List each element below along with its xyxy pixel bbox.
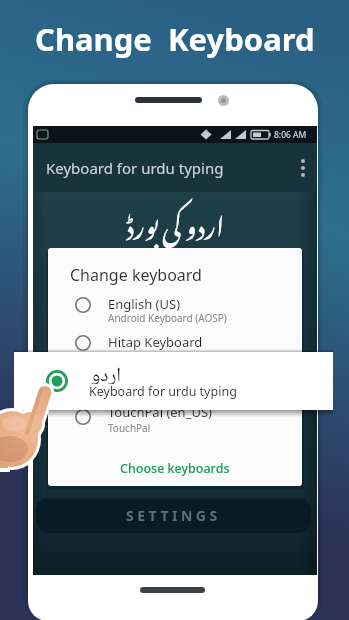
- button[interactable]: TouchPal (en_US): [48, 399, 302, 439]
- staticText: اردو: [91, 360, 122, 384]
- staticText: Hitap Keyboard: [108, 333, 203, 351]
- staticText: Change Keyboard: [35, 18, 315, 60]
- staticText: Hitap Keyboard: [108, 349, 181, 363]
- button[interactable]: Choose keyboards: [120, 460, 230, 477]
- button[interactable]: اردو: [14, 352, 333, 410]
- staticText: Change keyboard: [70, 264, 202, 286]
- staticText: Keyboard for urdu typing: [89, 383, 237, 400]
- staticText: TouchPal (en_US): [108, 403, 212, 421]
- button[interactable]: [293, 156, 317, 180]
- staticText: Android Keyboard (AOSP): [108, 311, 227, 325]
- staticText: TouchPal: [108, 421, 151, 435]
- staticText: اردو کی بورڈ: [126, 188, 225, 252]
- button[interactable]: SETTINGS: [36, 497, 311, 533]
- staticText: SETTINGS: [126, 506, 221, 525]
- staticText: Choose keyboards: [120, 460, 230, 477]
- staticText: Keyboard for urdu typing: [46, 158, 224, 178]
- staticText: English (US): [108, 295, 181, 313]
- button[interactable]: English (US): [48, 291, 302, 331]
- staticText: 8:06 AM: [274, 129, 307, 141]
- button[interactable]: Hitap Keyboard: [48, 329, 302, 369]
